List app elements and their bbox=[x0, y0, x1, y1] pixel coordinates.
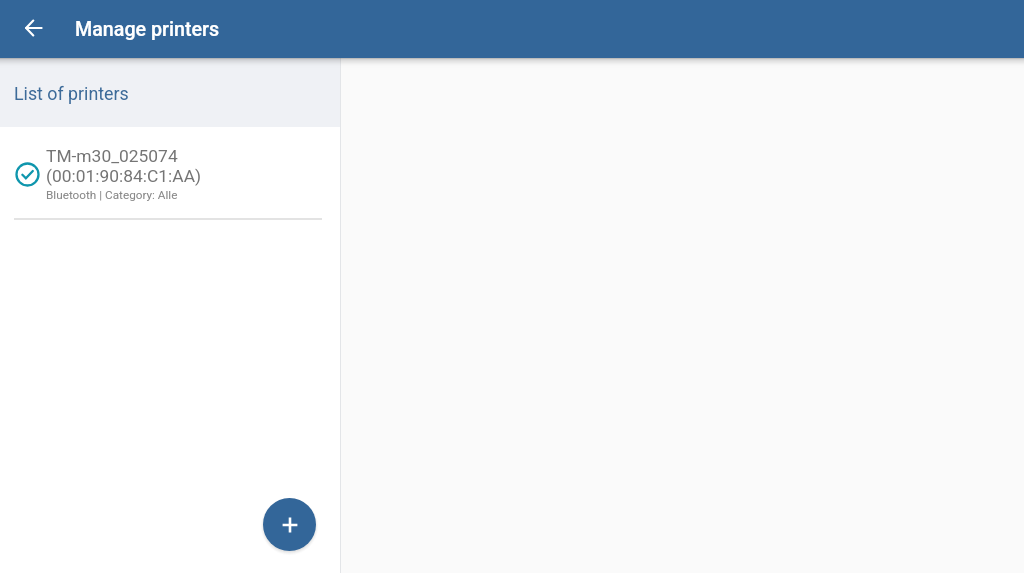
staticText: TM-m30_025074 (00:01:90:84:C1:AA) bbox=[46, 146, 202, 186]
button[interactable]: TM-m30_025074 (00:01:90:84:C1:AA) bbox=[0, 127, 340, 220]
staticText: Manage printers bbox=[75, 18, 220, 41]
button[interactable]: Back bbox=[16, 10, 52, 46]
staticText: List of printers bbox=[14, 83, 129, 104]
staticText: Bluetooth | Category: Alle bbox=[46, 188, 178, 202]
button[interactable]: Add printer bbox=[263, 498, 316, 551]
